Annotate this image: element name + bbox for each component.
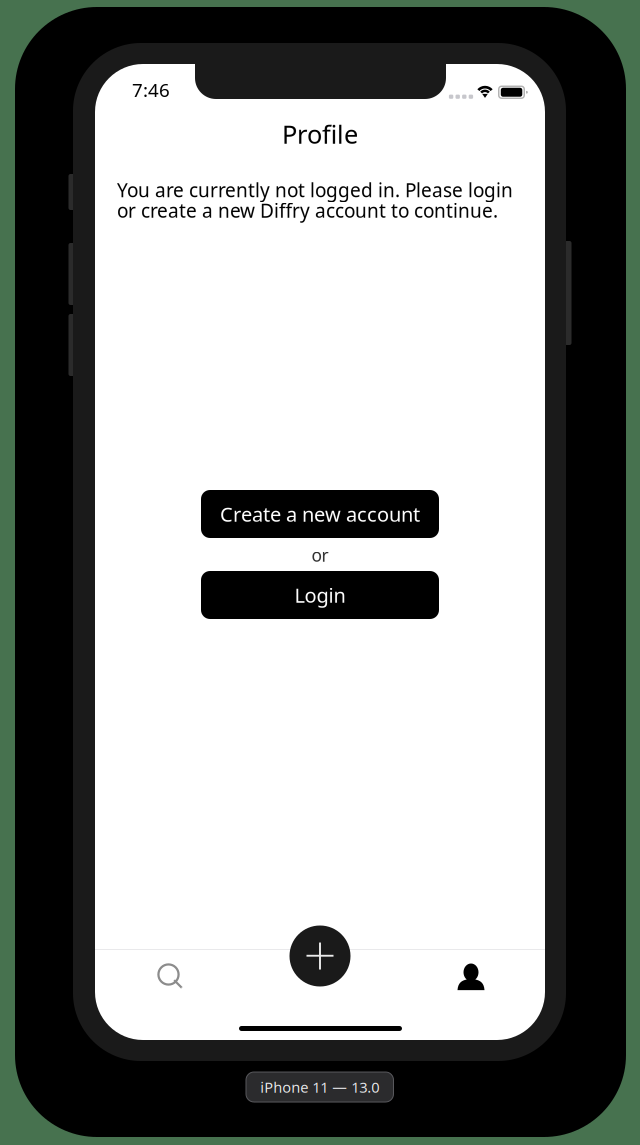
staticText: 7:46 (132, 77, 170, 102)
staticText: Create a new account (220, 501, 420, 527)
button[interactable]: Add (289, 925, 350, 986)
button[interactable]: Login (201, 571, 439, 619)
staticText: You are currently not logged in. Please … (117, 177, 513, 223)
button[interactable]: Search (116, 948, 226, 1006)
staticText: Login (294, 582, 345, 608)
button[interactable]: Profile (416, 947, 526, 1005)
staticText: or (311, 543, 328, 566)
staticText: iPhone 11 — 13.0 (260, 1077, 379, 1097)
button[interactable]: Create a new account (201, 490, 439, 538)
staticText: Profile (282, 117, 358, 151)
